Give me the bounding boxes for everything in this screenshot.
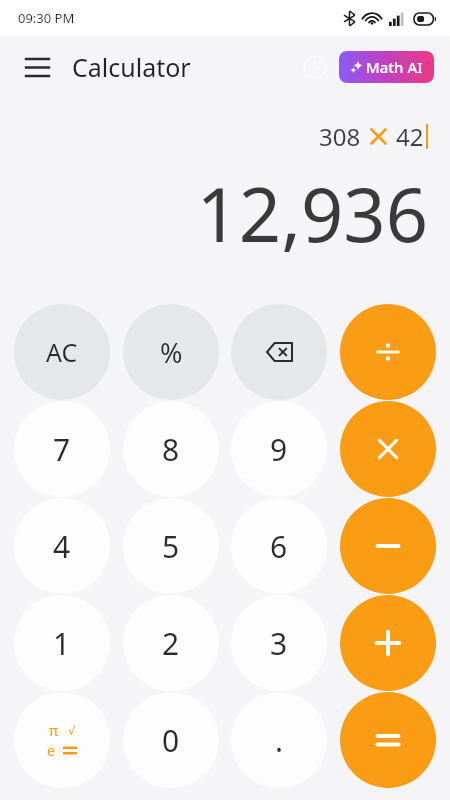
- button[interactable]: AC: [14, 304, 110, 400]
- staticText: 5: [162, 526, 180, 567]
- button[interactable]: 4: [14, 498, 110, 594]
- staticText: 0: [162, 720, 180, 761]
- staticText: 2: [162, 623, 180, 664]
- staticText: 7: [53, 429, 71, 470]
- button[interactable]: 1: [14, 595, 110, 691]
- staticText: e: [47, 741, 55, 760]
- staticText: AC: [46, 335, 78, 369]
- staticText: √: [68, 724, 76, 738]
- staticText: 1: [53, 623, 71, 664]
- staticText: Math AI: [366, 57, 423, 77]
- button[interactable]: 3: [231, 595, 327, 691]
- button[interactable]: Divide: [340, 304, 436, 400]
- button[interactable]: %: [123, 304, 219, 400]
- button[interactable]: Scientific functions: [14, 692, 110, 788]
- staticText: .: [275, 720, 284, 761]
- staticText: %: [160, 334, 183, 371]
- button[interactable]: 6: [231, 498, 327, 594]
- button[interactable]: Math AI: [339, 51, 434, 83]
- button[interactable]: Multiply: [340, 401, 436, 497]
- staticText: 308: [319, 120, 361, 153]
- button[interactable]: 0: [123, 692, 219, 788]
- staticText: 6: [270, 526, 288, 567]
- staticText: 12,936: [196, 163, 428, 264]
- staticText: π: [49, 721, 59, 740]
- staticText: 3: [270, 623, 288, 664]
- staticText: 09:30 PM: [18, 9, 75, 27]
- staticText: 42: [396, 120, 424, 153]
- button[interactable]: 9: [231, 401, 327, 497]
- staticText: 4: [53, 526, 71, 567]
- button[interactable]: Minus: [340, 498, 436, 594]
- button[interactable]: Menu: [16, 46, 58, 88]
- staticText: Calculator: [72, 50, 191, 84]
- button[interactable]: 5: [123, 498, 219, 594]
- staticText: 9: [270, 429, 288, 470]
- button[interactable]: Equals: [340, 692, 436, 788]
- button[interactable]: .: [231, 692, 327, 788]
- button[interactable]: 2: [123, 595, 219, 691]
- button[interactable]: 8: [123, 401, 219, 497]
- staticText: 8: [162, 429, 180, 470]
- button[interactable]: Plus: [340, 595, 436, 691]
- button[interactable]: Backspace: [231, 304, 327, 400]
- button[interactable]: 7: [14, 401, 110, 497]
